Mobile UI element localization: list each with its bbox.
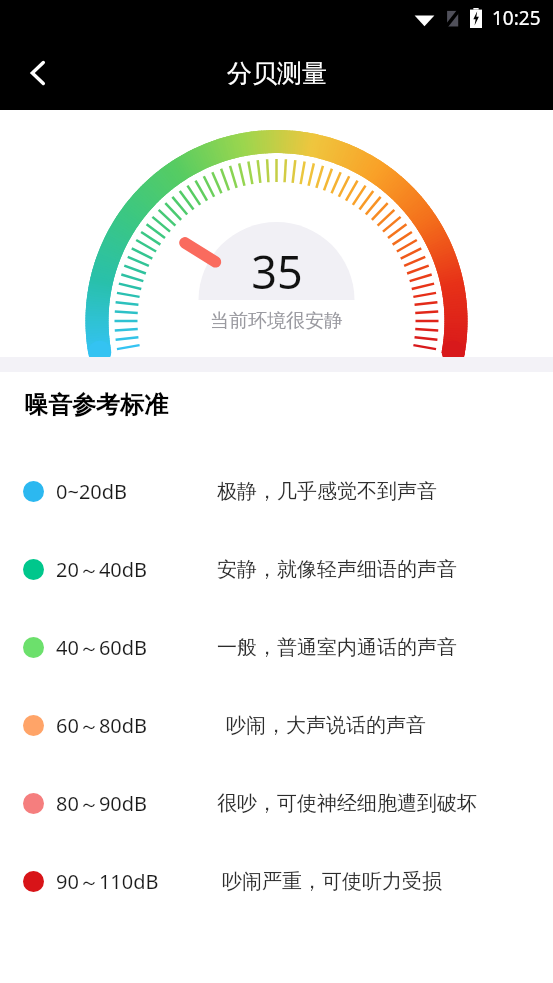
staticText: 一般，普通室内通话的声音 xyxy=(217,635,457,660)
staticText: 安静，就像轻声细语的声音 xyxy=(217,557,457,582)
staticText: 60～80dB xyxy=(56,712,217,739)
staticText: 吵闹严重，可使听力受损 xyxy=(222,869,442,894)
staticText: 35 xyxy=(251,241,303,302)
staticText: 0~20dB xyxy=(56,478,217,505)
button[interactable]: 90～110dB xyxy=(0,842,553,920)
button[interactable]: 0~20dB xyxy=(0,452,553,530)
staticText: 当前环境很安静 xyxy=(210,309,343,333)
staticText: 40～60dB xyxy=(56,634,217,661)
staticText: 很吵，可使神经细胞遭到破坏 xyxy=(217,791,477,816)
staticText: 吵闹，大声说话的声音 xyxy=(226,713,426,738)
staticText: 极静，几乎感觉不到声音 xyxy=(217,479,437,504)
staticText: 分贝测量 xyxy=(227,58,327,89)
button[interactable]: Back xyxy=(12,46,66,100)
staticText: 10:25 xyxy=(492,5,541,31)
staticText: 90～110dB xyxy=(56,868,217,895)
staticText: 80～90dB xyxy=(56,790,217,817)
staticText: 20～40dB xyxy=(56,556,217,583)
button[interactable]: 60～80dB xyxy=(0,686,553,764)
staticText: 噪音参考标准 xyxy=(24,390,168,420)
button[interactable]: 80～90dB xyxy=(0,764,553,842)
button[interactable]: 20～40dB xyxy=(0,530,553,608)
button[interactable]: 40～60dB xyxy=(0,608,553,686)
